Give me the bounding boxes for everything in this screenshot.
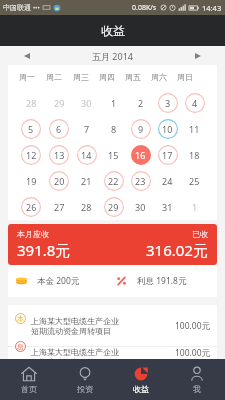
button[interactable]: 4 bbox=[181, 90, 208, 116]
staticText: 首页 bbox=[21, 384, 37, 394]
button[interactable]: 13 bbox=[45, 142, 73, 168]
button[interactable]: 26 bbox=[17, 194, 45, 220]
staticText: 31 bbox=[162, 201, 173, 213]
staticText: 周日 bbox=[177, 72, 193, 82]
button[interactable]: 10 bbox=[154, 116, 181, 142]
button[interactable]: 16 bbox=[127, 142, 154, 168]
button[interactable]: 本月应收 bbox=[8, 224, 217, 265]
button[interactable]: 12 bbox=[17, 142, 45, 168]
button[interactable]: 14 bbox=[73, 142, 100, 168]
staticText: 13 bbox=[54, 149, 65, 161]
button[interactable]: Next month bbox=[171, 46, 225, 65]
staticText: 短期流动资金周转项目 bbox=[31, 326, 111, 336]
staticText: 2 bbox=[138, 97, 144, 109]
button[interactable]: 7 bbox=[73, 116, 100, 142]
staticText: 中国联通 bbox=[3, 3, 31, 12]
staticText: 本金 200元 bbox=[37, 275, 80, 287]
button[interactable]: 2 bbox=[127, 90, 154, 116]
button[interactable]: 29 bbox=[100, 194, 127, 220]
staticText: 收益 bbox=[101, 23, 125, 38]
staticText: 收益 bbox=[133, 384, 149, 394]
button[interactable]: 3 bbox=[154, 90, 181, 116]
button[interactable]: 22 bbox=[100, 168, 127, 194]
staticText: 14 bbox=[81, 149, 92, 161]
button[interactable]: Previous month bbox=[0, 46, 54, 65]
staticText: 16 bbox=[135, 149, 146, 161]
staticText: 12 bbox=[26, 149, 37, 161]
staticText: 周三 bbox=[73, 72, 89, 82]
staticText: 15 bbox=[108, 149, 119, 161]
button[interactable]: 6 bbox=[45, 116, 73, 142]
staticText: 息 bbox=[17, 343, 24, 351]
staticText: 5 bbox=[28, 123, 34, 135]
staticText: 29 bbox=[108, 201, 119, 213]
button[interactable]: 我 bbox=[169, 359, 225, 400]
button[interactable]: 利息 191.8元 bbox=[112, 265, 217, 297]
button[interactable]: 1 bbox=[100, 90, 127, 116]
staticText: 8 bbox=[111, 123, 117, 135]
staticText: 19 bbox=[26, 175, 37, 187]
staticText: 3 bbox=[165, 97, 171, 109]
button[interactable]: 28 bbox=[73, 194, 100, 220]
staticText: 27 bbox=[54, 201, 65, 213]
staticText: 22 bbox=[108, 175, 119, 187]
staticText: 周五 bbox=[125, 72, 141, 82]
staticText: 391.8元 bbox=[17, 240, 71, 260]
button[interactable]: 27 bbox=[45, 194, 73, 220]
staticText: 上海某大型电缆生产企业 bbox=[31, 347, 119, 357]
staticText: 周四 bbox=[99, 72, 115, 82]
button[interactable]: 29 bbox=[45, 90, 73, 116]
staticText: 100.00元 bbox=[175, 347, 211, 359]
staticText: 0.08K/s bbox=[132, 3, 157, 13]
staticText: 1 bbox=[111, 97, 117, 109]
staticText: 23 bbox=[135, 175, 146, 187]
button[interactable]: 23 bbox=[127, 168, 154, 194]
staticText: 本 bbox=[17, 315, 24, 323]
staticText: 30 bbox=[135, 201, 146, 213]
staticText: 周一 bbox=[19, 72, 35, 82]
staticText: 28 bbox=[26, 97, 37, 109]
staticText: 上海某大型电缆生产企业 bbox=[31, 316, 119, 326]
staticText: 周二 bbox=[46, 72, 62, 82]
button[interactable]: 9 bbox=[127, 116, 154, 142]
staticText: 21 bbox=[81, 175, 92, 187]
button[interactable]: 息 bbox=[8, 347, 217, 359]
button[interactable]: 15 bbox=[100, 142, 127, 168]
staticText: 4 bbox=[192, 97, 198, 109]
button[interactable]: 20 bbox=[45, 168, 73, 194]
button[interactable]: 21 bbox=[73, 168, 100, 194]
staticText: 11 bbox=[189, 123, 200, 135]
staticText: 投资 bbox=[77, 384, 93, 394]
button[interactable]: 首页 bbox=[0, 359, 57, 400]
button[interactable]: 投资 bbox=[57, 359, 113, 400]
button[interactable]: 28 bbox=[17, 90, 45, 116]
button[interactable]: 25 bbox=[181, 168, 208, 194]
button[interactable]: 17 bbox=[154, 142, 181, 168]
button[interactable]: 收益 bbox=[113, 359, 169, 400]
staticText: 利息 191.8元 bbox=[137, 275, 187, 287]
staticText: 30 bbox=[81, 97, 92, 109]
staticText: 100.00元 bbox=[175, 320, 211, 332]
staticText: 17 bbox=[162, 149, 173, 161]
button[interactable]: 30 bbox=[127, 194, 154, 220]
button[interactable]: 本 bbox=[8, 305, 217, 346]
button[interactable]: 30 bbox=[73, 90, 100, 116]
button[interactable]: 11 bbox=[181, 116, 208, 142]
staticText: 周六 bbox=[151, 72, 167, 82]
button[interactable]: 18 bbox=[181, 142, 208, 168]
button[interactable]: 31 bbox=[154, 194, 181, 220]
button[interactable]: 1 bbox=[181, 194, 208, 220]
staticText: 29 bbox=[54, 97, 65, 109]
staticText: 316.02元 bbox=[146, 240, 208, 260]
staticText: 1 bbox=[192, 201, 198, 213]
staticText: 26 bbox=[26, 201, 37, 213]
button[interactable]: 5 bbox=[17, 116, 45, 142]
staticText: 本月应收 bbox=[17, 229, 49, 239]
staticText: 7 bbox=[84, 123, 90, 135]
button[interactable]: 24 bbox=[154, 168, 181, 194]
button[interactable]: 8 bbox=[100, 116, 127, 142]
button[interactable]: 19 bbox=[17, 168, 45, 194]
staticText: 18 bbox=[189, 149, 200, 161]
staticText: 28 bbox=[81, 201, 92, 213]
button[interactable]: 本金 200元 bbox=[8, 265, 112, 297]
